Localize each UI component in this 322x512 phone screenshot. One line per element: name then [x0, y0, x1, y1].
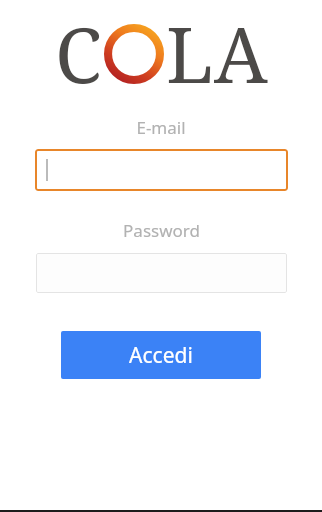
button[interactable]	[36, 253, 287, 293]
staticText: Accedi	[129, 341, 193, 370]
staticText: Password	[123, 219, 200, 242]
staticText: E-mail	[136, 116, 186, 139]
staticText: L	[166, 2, 214, 106]
button[interactable]: Accedi	[61, 331, 261, 379]
staticText: C	[55, 2, 102, 106]
button[interactable]	[35, 149, 288, 191]
other: COLA logo	[102, 22, 166, 86]
staticText: A	[214, 2, 268, 106]
